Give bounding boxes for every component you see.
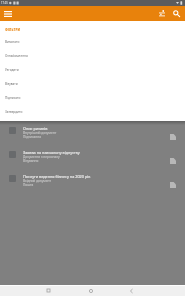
staticText: Внутрішній документ (23, 131, 57, 135)
button[interactable]: Узгодити (0, 63, 185, 77)
staticText: Заявка на навчальну відпустку (23, 150, 80, 155)
button[interactable]: Home (79, 285, 103, 296)
staticText: Пошта (23, 183, 34, 187)
staticText: Ознайомлення (5, 54, 28, 58)
button[interactable]: Open document (165, 148, 180, 172)
staticText: Візування (23, 159, 39, 163)
staticText: Вхідний документ (23, 179, 51, 183)
staticText: Візувати (5, 82, 18, 86)
button[interactable]: Open document (165, 124, 180, 148)
staticText: 17:25 (1, 1, 8, 5)
staticText: Підписання (23, 135, 42, 139)
button[interactable]: Підписати (0, 91, 185, 105)
button[interactable]: Послуги ведення бізнесу на 2020 рік (0, 172, 185, 196)
staticText: Послуги ведення бізнесу на 2020 рік (23, 174, 91, 179)
staticText: Узгодити (5, 68, 19, 72)
button[interactable]: Виконати (0, 35, 185, 49)
staticText: Виконати (5, 40, 20, 44)
button[interactable]: Open document (165, 172, 180, 196)
button[interactable]: Open navigation drawer (0, 6, 16, 21)
button[interactable]: Back (119, 285, 143, 296)
button[interactable]: Search (169, 6, 184, 21)
button[interactable]: Візувати (0, 77, 185, 91)
button[interactable]: Recents (36, 285, 60, 296)
button[interactable]: Заявка на навчальну відпустку (0, 148, 185, 172)
button[interactable]: Затвердити (0, 105, 185, 119)
staticText: Опис ризиків (23, 126, 48, 131)
button[interactable]: Опис ризиків (0, 124, 185, 148)
button[interactable]: Ознайомлення (0, 49, 185, 63)
staticText: Підписати (5, 96, 21, 100)
staticText: Документи з персоналу (23, 155, 60, 159)
staticText: ФІЛЬТРИ (5, 28, 21, 32)
staticText: Затвердити (5, 110, 23, 114)
button[interactable]: Filter (154, 6, 169, 21)
